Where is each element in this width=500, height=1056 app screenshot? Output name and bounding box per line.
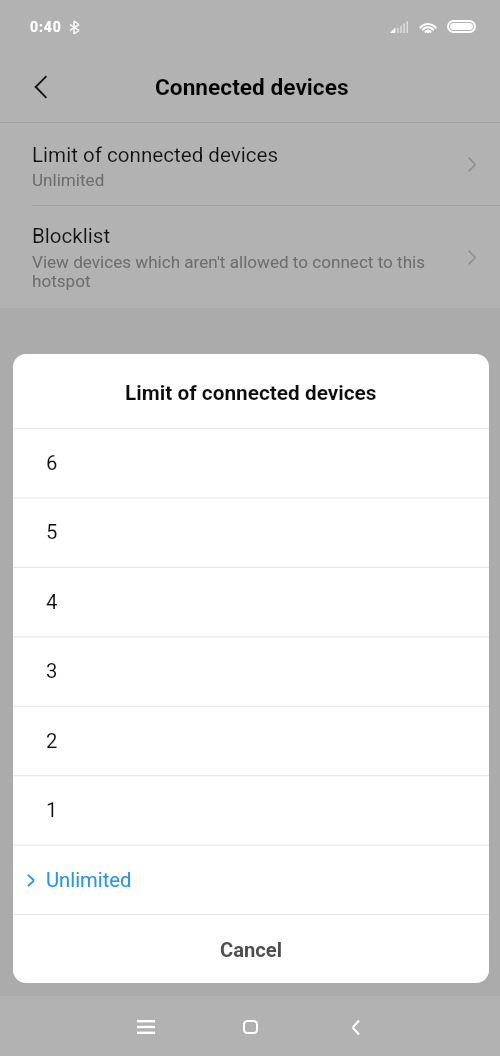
staticText: 1	[46, 798, 58, 822]
button[interactable]: 6	[13, 428, 489, 497]
button[interactable]: Recent apps	[124, 1005, 168, 1049]
button[interactable]: Home	[228, 1005, 272, 1049]
staticText: Limit of connected devices	[125, 381, 377, 405]
staticText: 4	[46, 590, 58, 614]
button[interactable]: 5	[13, 497, 489, 566]
button[interactable]: Back	[20, 66, 61, 107]
button[interactable]: Blocklist	[0, 206, 500, 308]
staticText: 0:40	[30, 19, 62, 35]
staticText: 6	[46, 451, 58, 475]
button[interactable]: Unlimited	[13, 845, 489, 914]
staticText: Connected devices	[155, 74, 349, 101]
staticText: 5	[46, 520, 58, 544]
button[interactable]: Back	[333, 1005, 377, 1049]
button[interactable]: 4	[13, 567, 489, 636]
staticText: Unlimited	[46, 868, 132, 892]
button[interactable]: Limit of connected devices	[0, 123, 500, 205]
button[interactable]: 1	[13, 775, 489, 844]
button[interactable]: 2	[13, 706, 489, 775]
button[interactable]: Cancel	[13, 914, 489, 983]
staticText: Unlimited	[32, 170, 105, 190]
staticText: 2	[46, 729, 58, 753]
staticText: Cancel	[220, 938, 283, 962]
staticText: Blocklist	[32, 224, 111, 248]
button[interactable]: 3	[13, 636, 489, 705]
staticText: 3	[46, 659, 58, 683]
staticText: View devices which aren't allowed to con…	[32, 252, 426, 291]
staticText: Limit of connected devices	[32, 143, 279, 167]
